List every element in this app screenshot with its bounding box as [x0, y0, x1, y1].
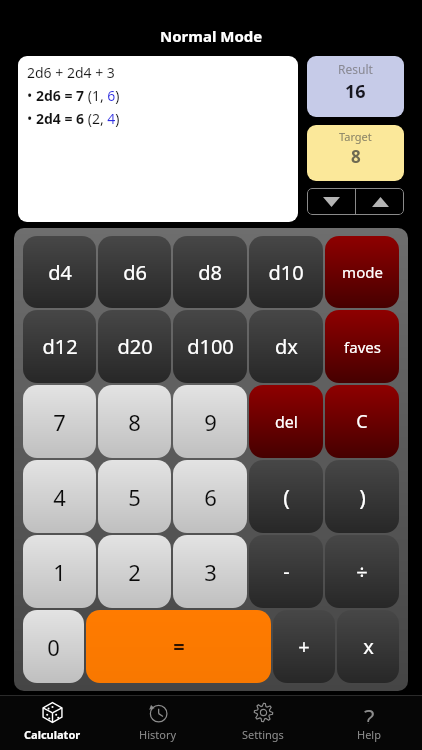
button[interactable]: faves: [325, 310, 399, 383]
staticText: 4: [53, 482, 66, 512]
button[interactable]: d20: [98, 310, 171, 383]
staticText: 5: [128, 482, 141, 512]
staticText: ?: [364, 701, 375, 724]
button[interactable]: 6: [173, 460, 247, 533]
staticText: 3: [204, 557, 217, 587]
button[interactable]: ÷: [325, 535, 399, 608]
button[interactable]: 2d6 + 2d4 + 3: [18, 56, 298, 222]
button[interactable]: dx: [249, 310, 323, 383]
button[interactable]: 8: [98, 385, 171, 458]
button[interactable]: Calculator: [0, 696, 105, 750]
staticText: 2d6 + 2d4 + 3: [27, 63, 115, 82]
button[interactable]: 0: [23, 610, 84, 683]
staticText: C: [356, 409, 368, 434]
button[interactable]: d6: [98, 236, 171, 308]
button[interactable]: d12: [23, 310, 96, 383]
button[interactable]: Target: [307, 125, 404, 181]
button[interactable]: Increase target: [356, 188, 404, 215]
staticText: ÷: [356, 558, 368, 585]
button[interactable]: d10: [249, 236, 323, 308]
staticText: 8: [351, 145, 361, 168]
button[interactable]: History: [105, 696, 210, 750]
staticText: • 2d6 = 7 (1, 6): [27, 86, 120, 105]
staticText: d8: [198, 259, 222, 286]
staticText: mode: [342, 262, 383, 282]
button[interactable]: mode: [325, 236, 399, 308]
button[interactable]: Settings: [210, 696, 316, 750]
staticText: Target: [339, 129, 372, 144]
button[interactable]: 5: [98, 460, 171, 533]
staticText: d4: [48, 259, 72, 286]
staticText: • 2d4 = 6 (2, 4): [27, 109, 120, 128]
button[interactable]: Decrease target: [307, 188, 355, 215]
staticText: dx: [275, 333, 298, 360]
button[interactable]: d8: [173, 236, 247, 308]
button[interactable]: C: [325, 385, 399, 458]
staticText: History: [139, 727, 177, 742]
button[interactable]: -: [249, 535, 323, 608]
button[interactable]: x: [337, 610, 399, 683]
staticText: =: [173, 633, 185, 660]
staticText: 1: [53, 557, 66, 587]
button[interactable]: d4: [23, 236, 96, 308]
staticText: d10: [268, 259, 304, 286]
staticText: Help: [357, 727, 381, 742]
button[interactable]: 1: [23, 535, 96, 608]
staticText: x: [363, 633, 374, 660]
staticText: (: [283, 482, 290, 512]
staticText: Calculator: [24, 727, 81, 742]
staticText: Settings: [242, 727, 284, 742]
button[interactable]: (: [249, 460, 323, 533]
button[interactable]: del: [249, 385, 323, 458]
staticText: faves: [344, 337, 381, 357]
button[interactable]: ?: [316, 696, 422, 750]
button[interactable]: 2: [98, 535, 171, 608]
staticText: Result: [338, 61, 373, 77]
staticText: d20: [117, 333, 153, 360]
button[interactable]: 9: [173, 385, 247, 458]
button[interactable]: 7: [23, 385, 96, 458]
button[interactable]: =: [86, 610, 271, 683]
staticText: 2: [128, 557, 141, 587]
button[interactable]: 3: [173, 535, 247, 608]
staticText: 6: [204, 482, 217, 512]
staticText: 0: [47, 632, 60, 662]
staticText: +: [298, 633, 310, 660]
staticText: d12: [42, 333, 78, 360]
button[interactable]: ): [325, 460, 399, 533]
button[interactable]: +: [273, 610, 335, 683]
button[interactable]: Result: [307, 56, 404, 117]
staticText: del: [275, 411, 298, 433]
staticText: 9: [204, 407, 217, 437]
staticText: Normal Mode: [160, 26, 263, 46]
button[interactable]: d100: [173, 310, 247, 383]
staticText: -: [283, 558, 290, 585]
staticText: 8: [128, 407, 141, 437]
staticText: d6: [123, 259, 147, 286]
staticText: ): [359, 482, 366, 512]
staticText: d100: [187, 333, 234, 360]
button[interactable]: 4: [23, 460, 96, 533]
staticText: 16: [345, 79, 366, 104]
staticText: 7: [53, 407, 66, 437]
